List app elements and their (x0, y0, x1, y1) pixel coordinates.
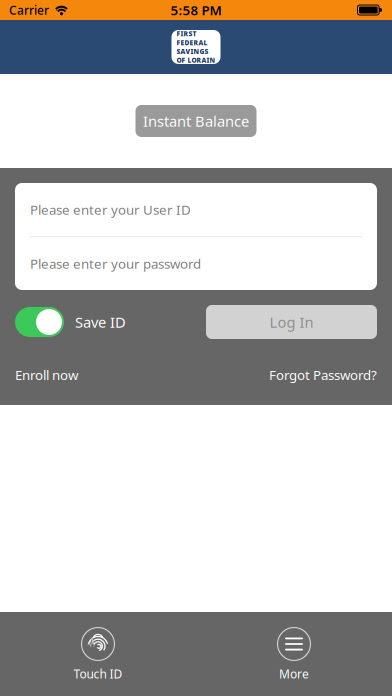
staticText: More (279, 666, 309, 682)
staticText: Log In (269, 312, 313, 332)
staticText: Please enter your User ID (30, 201, 191, 218)
staticText: Carrier (9, 2, 49, 18)
staticText: 5:58 PM (170, 1, 221, 19)
staticText: FEDERAL (176, 38, 207, 47)
staticText: Instant Balance (143, 111, 249, 131)
button[interactable]: Forgot Password? (269, 366, 377, 384)
button[interactable]: Instant Balance (135, 105, 256, 137)
button[interactable]: More (196, 627, 392, 682)
staticText: Enroll now (15, 366, 78, 384)
staticText: Please enter your password (30, 255, 201, 272)
staticText: OF LORAIN (176, 56, 215, 65)
staticText: Forgot Password? (269, 366, 377, 384)
button[interactable]: Touch ID (0, 627, 196, 682)
button[interactable]: Log In (206, 305, 377, 339)
button[interactable]: Please enter your password (15, 237, 377, 290)
button[interactable]: Please enter your User ID (15, 183, 377, 236)
button[interactable]: Save ID (15, 307, 126, 337)
staticText: Save ID (75, 312, 126, 332)
staticText: SAVINGS (176, 47, 208, 56)
staticText: FIRST (176, 29, 196, 38)
staticText: Touch ID (73, 666, 122, 682)
button[interactable]: Enroll now (15, 366, 78, 384)
